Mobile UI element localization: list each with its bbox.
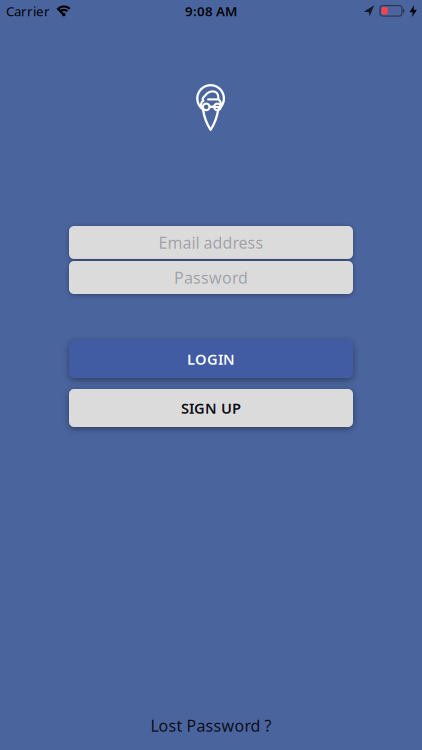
button[interactable]: Email address	[69, 226, 353, 259]
staticText: Email address	[158, 232, 263, 253]
button[interactable]: Password	[69, 261, 353, 294]
button[interactable]: Lost Password ?	[150, 715, 271, 736]
staticText: LOGIN	[187, 349, 235, 369]
button[interactable]: LOGIN	[69, 340, 353, 378]
button[interactable]: SIGN UP	[69, 389, 353, 427]
staticText: Carrier	[6, 2, 50, 20]
staticText: 9:08 AM	[185, 2, 237, 20]
staticText: Lost Password ?	[150, 715, 271, 736]
staticText: Password	[174, 267, 248, 288]
staticText: SIGN UP	[181, 398, 241, 418]
